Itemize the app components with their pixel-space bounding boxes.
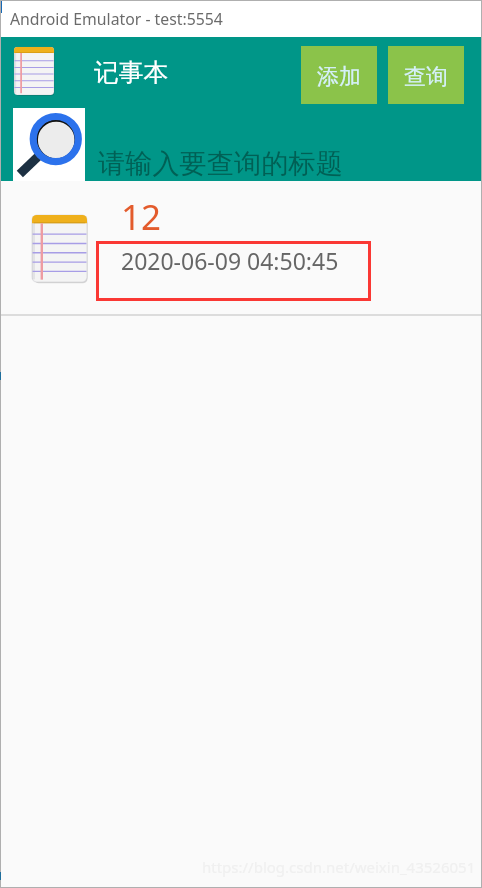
button[interactable]: 12 [0,181,482,314]
staticText: 2020-06-09 04:50:45 [121,245,339,276]
staticText: 记事本 [94,57,169,88]
button[interactable]: 请输入要查询的标题 [85,108,480,181]
staticText: https://blog.csdn.net/weixin_43526051 [202,857,476,877]
staticText: Android Emulator - test:5554 [10,8,223,30]
staticText: 查询 [404,63,448,91]
staticText: 请输入要查询的标题 [98,147,343,181]
button[interactable]: 查询 [388,46,464,104]
staticText: 12 [121,193,162,241]
staticText: 添加 [317,63,361,91]
button[interactable]: Search [13,108,85,181]
button[interactable]: 添加 [301,46,377,104]
